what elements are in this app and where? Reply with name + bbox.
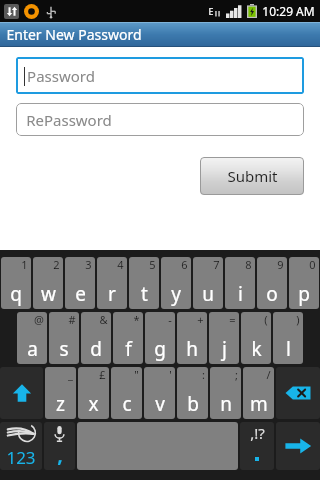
button[interactable]: 1 (1, 257, 31, 309)
button[interactable]: RePassword (16, 103, 304, 136)
staticText: / (266, 367, 271, 382)
staticText: , (57, 441, 63, 468)
button[interactable]: Password (16, 57, 304, 94)
staticText: - (168, 312, 172, 327)
staticText: k (251, 336, 262, 362)
button[interactable]: 6 (161, 257, 191, 309)
staticText: 0 (309, 257, 316, 272)
staticText: 7 (213, 257, 220, 272)
staticText: 3 (85, 257, 92, 272)
staticText: c (122, 391, 132, 417)
staticText: # (68, 312, 76, 327)
staticText: @ (34, 312, 44, 327)
staticText: £ (99, 367, 106, 382)
staticText: = (229, 312, 236, 327)
button[interactable]: _ (45, 367, 76, 419)
staticText: m (250, 391, 268, 417)
staticText: g (154, 336, 166, 362)
staticText: RePassword (26, 110, 112, 130)
staticText: 123 (6, 446, 36, 469)
button[interactable]: / (243, 367, 274, 419)
button[interactable]: 5 (129, 257, 159, 309)
button[interactable]: £ (78, 367, 109, 419)
button[interactable]: + (177, 312, 207, 364)
button[interactable]: ( (241, 312, 271, 364)
staticText: 2 (53, 257, 60, 272)
staticText: e (75, 281, 86, 307)
button[interactable]: * (113, 312, 143, 364)
staticText: & (99, 312, 108, 327)
staticText: z (56, 391, 65, 417)
staticText: ) (296, 312, 300, 327)
button[interactable]: 2 (33, 257, 63, 309)
staticText: 10:29 AM (262, 3, 315, 19)
staticText: i (238, 281, 243, 307)
staticText: b (187, 391, 199, 417)
button[interactable]: 3 (65, 257, 95, 309)
staticText: l (286, 336, 291, 362)
button[interactable]: ,!? (240, 422, 274, 470)
staticText: Submit (227, 166, 278, 186)
button[interactable]: Shift (0, 367, 43, 419)
staticText: j (222, 336, 227, 362)
staticText: ,!? (250, 423, 265, 443)
staticText: Password (27, 66, 95, 86)
staticText: x (88, 391, 99, 417)
button[interactable]: # (49, 312, 79, 364)
button[interactable]: @ (17, 312, 47, 364)
button[interactable]: ) (273, 312, 303, 364)
button[interactable]: " (111, 367, 142, 419)
staticText: q (10, 281, 22, 307)
staticText: r (108, 281, 116, 307)
staticText: f (125, 336, 132, 362)
button[interactable]: = (209, 312, 239, 364)
staticText: y (171, 281, 181, 307)
staticText: s (59, 336, 69, 362)
button[interactable]: Enter (276, 422, 320, 470)
button[interactable]: 7 (193, 257, 223, 309)
button[interactable]: & (81, 312, 111, 364)
button[interactable]: 8 (225, 257, 255, 309)
staticText: 4 (117, 257, 124, 272)
staticText: ( (264, 312, 268, 327)
button[interactable]: - (145, 312, 175, 364)
button[interactable]: Symbols 123 (0, 422, 42, 470)
button[interactable]: Submit (200, 157, 304, 195)
staticText: 1 (21, 257, 28, 272)
staticText: 9 (277, 257, 284, 272)
staticText: n (220, 391, 232, 417)
staticText: u (202, 281, 214, 307)
button[interactable]: Backspace (276, 367, 320, 419)
staticText: _ (68, 367, 73, 382)
staticText: w (41, 281, 56, 307)
staticText: E (208, 5, 214, 17)
staticText: h (186, 336, 198, 362)
staticText: : (202, 367, 205, 382)
staticText: ' (169, 367, 172, 382)
staticText: p (298, 281, 310, 307)
button[interactable]: ; (210, 367, 241, 419)
staticText: * (133, 312, 140, 327)
staticText: o (266, 281, 278, 307)
button[interactable]: 4 (97, 257, 127, 309)
button[interactable]: : (177, 367, 208, 419)
staticText: v (155, 391, 165, 417)
staticText: " (134, 367, 139, 382)
staticText: Enter New Password (6, 25, 142, 44)
staticText: 5 (149, 257, 156, 272)
button[interactable]: Voice input (44, 422, 75, 470)
button[interactable]: 0 (289, 257, 319, 309)
staticText: 6 (181, 257, 188, 272)
button[interactable]: ' (144, 367, 175, 419)
staticText: t (141, 281, 148, 307)
staticText: d (90, 336, 102, 362)
staticText: 8 (245, 257, 252, 272)
staticText: ; (235, 367, 238, 382)
staticText: + (197, 312, 204, 327)
staticText: a (27, 336, 38, 362)
button[interactable]: 9 (257, 257, 287, 309)
